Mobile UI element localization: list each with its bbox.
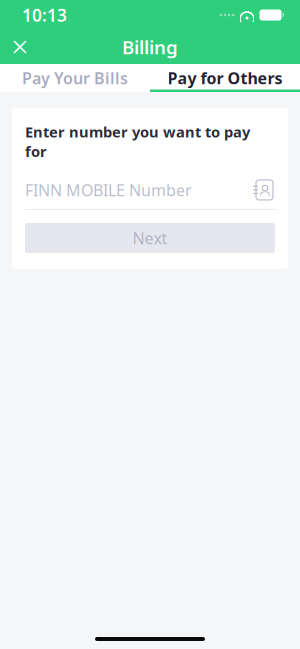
button[interactable]: Next (25, 223, 275, 253)
staticText: Pay for Others (167, 67, 282, 89)
staticText: FINN MOBILE Number (25, 179, 192, 200)
button[interactable]: Pay Your Bills (0, 64, 150, 92)
button[interactable]: Close (0, 30, 40, 64)
staticText: Enter number you want to pay for (25, 122, 250, 161)
button[interactable]: Pay for Others (150, 64, 300, 92)
staticText: 10:13 (22, 3, 67, 26)
staticText: Next (132, 227, 167, 248)
staticText: Pay Your Bills (22, 67, 128, 89)
staticText: Billing (122, 35, 178, 59)
button[interactable]: Choose from contacts (251, 177, 275, 203)
